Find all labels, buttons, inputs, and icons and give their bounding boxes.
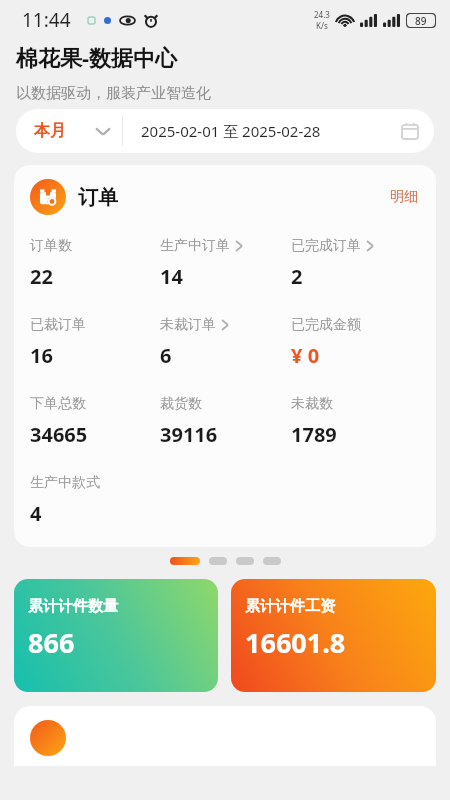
staticText: 39116 xyxy=(160,421,218,448)
staticText: 24.3 xyxy=(314,9,330,20)
staticText: 2025-02-01 至 2025-02-28 xyxy=(141,121,321,141)
staticText: 11:44 xyxy=(22,7,71,33)
staticText: 14 xyxy=(160,263,183,290)
staticText: 棉花果-数据中心 xyxy=(16,42,178,72)
staticText: 1789 xyxy=(291,421,337,448)
staticText: 累计计件工资 xyxy=(245,597,335,616)
staticText: 生产中订单 xyxy=(160,237,230,255)
staticText: 未裁订单 xyxy=(160,316,216,334)
staticText: 订单数 xyxy=(30,237,72,255)
staticText: 生产中款式 xyxy=(30,474,100,492)
staticText: 裁货数 xyxy=(160,395,202,413)
staticText: 已完成金额 xyxy=(291,316,361,334)
staticText: 16 xyxy=(30,342,53,369)
button[interactable]: 2025-02-01 至 2025-02-28 xyxy=(123,109,434,153)
staticText: 订单 xyxy=(78,185,118,210)
button[interactable]: 本月 xyxy=(16,109,122,153)
button[interactable]: 生产中订单 xyxy=(160,237,291,290)
button[interactable]: 已完成订单 xyxy=(291,237,422,290)
staticText: K/s xyxy=(316,20,328,31)
staticText: 累计计件数量 xyxy=(28,597,118,616)
staticText: 明细 xyxy=(390,188,418,206)
staticText: 22 xyxy=(30,263,53,290)
staticText: 下单总数 xyxy=(30,395,86,413)
other: Calendar xyxy=(402,123,418,139)
staticText: 2 xyxy=(291,263,303,290)
staticText: 6 xyxy=(160,342,172,369)
staticText: 本月 xyxy=(34,121,66,141)
staticText: 4 xyxy=(30,500,42,527)
staticText: 89 xyxy=(415,14,427,28)
staticText: 未裁数 xyxy=(291,395,333,413)
staticText: 16601.8 xyxy=(245,624,346,661)
staticText: 已裁订单 xyxy=(30,316,86,334)
button[interactable]: 累计计件工资 xyxy=(231,579,436,692)
staticText: 以数据驱动，服装产业智造化 xyxy=(16,84,211,103)
button[interactable]: 明细 xyxy=(386,184,422,210)
button[interactable]: 未裁订单 xyxy=(160,316,291,369)
staticText: ¥ 0 xyxy=(291,342,320,369)
staticText: 866 xyxy=(28,624,75,661)
staticText: 34665 xyxy=(30,421,88,448)
button[interactable]: 累计计件数量 xyxy=(14,579,218,692)
staticText: 已完成订单 xyxy=(291,237,361,255)
